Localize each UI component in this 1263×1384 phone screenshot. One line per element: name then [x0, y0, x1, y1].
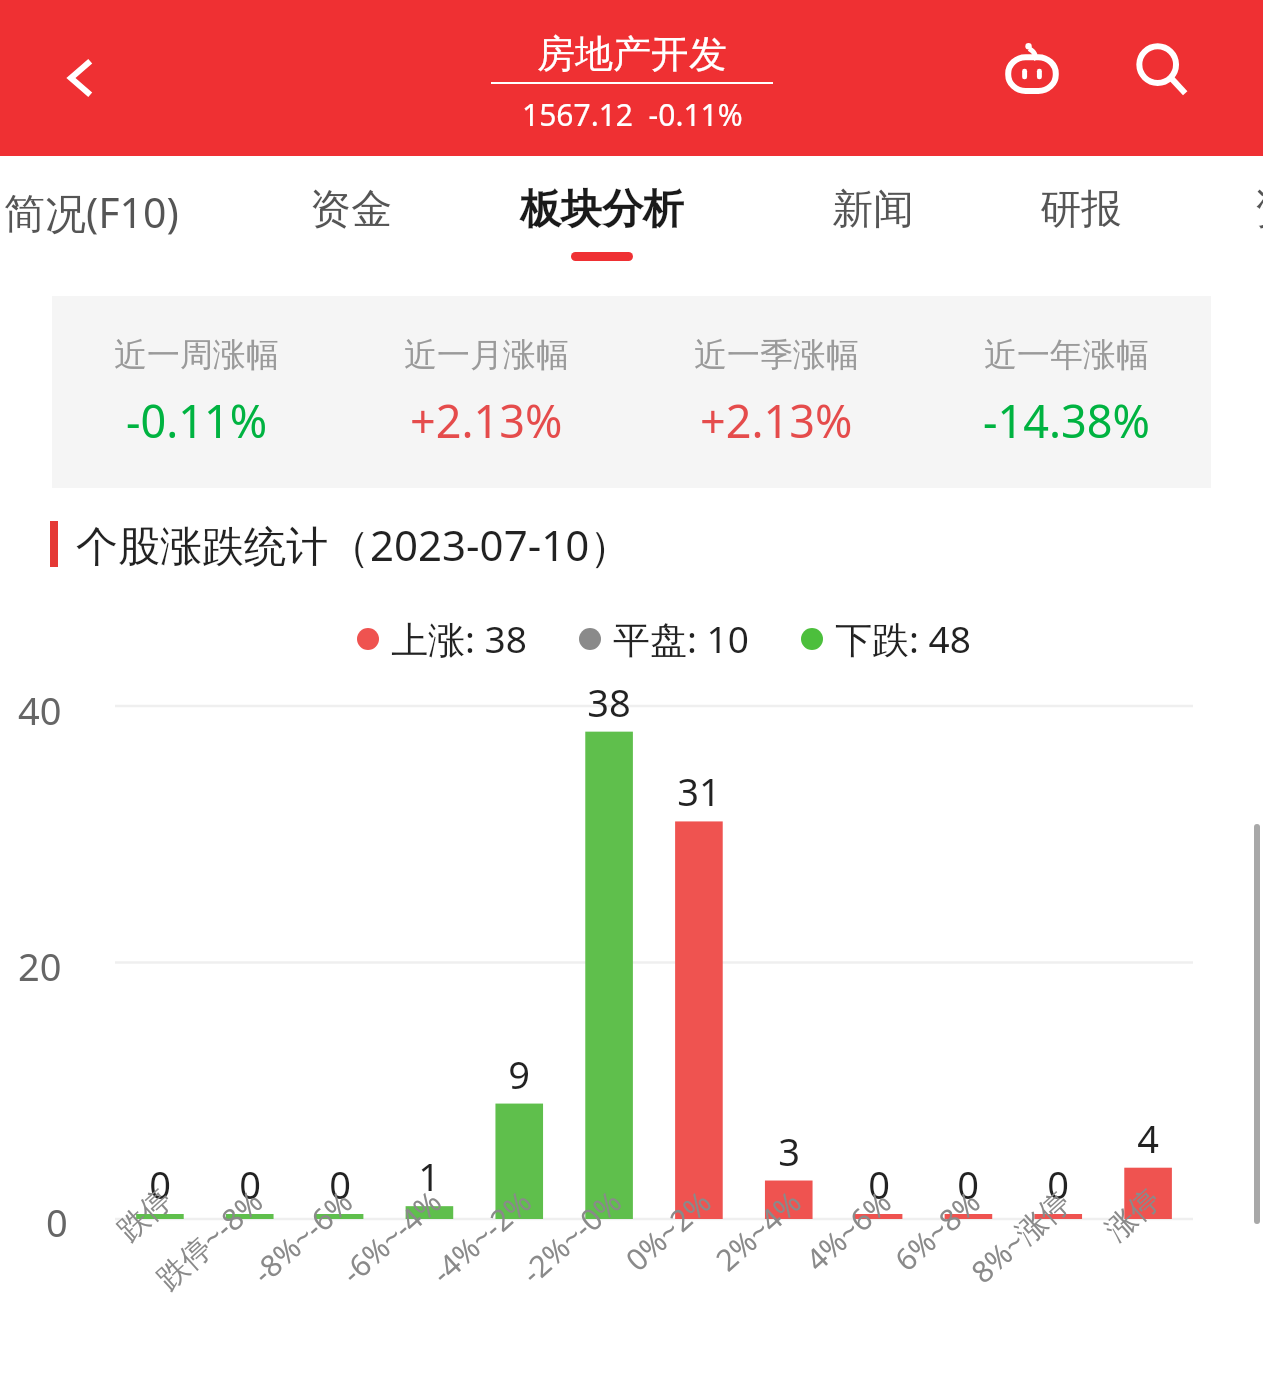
staticText: 个股涨跌统计（2023-07-10） — [76, 516, 632, 573]
staticText: 1 — [418, 1150, 440, 1202]
staticText: 8%~涨停 — [962, 1181, 1079, 1292]
button[interactable]: 近一季涨幅 — [631, 334, 921, 451]
button[interactable]: 资 — [1236, 156, 1263, 296]
staticText: 40 — [18, 684, 62, 736]
staticText: -0.11% — [126, 390, 268, 451]
staticText: 简况(F10) — [4, 184, 179, 240]
staticText: 0 — [46, 1196, 68, 1248]
staticText: 板块分析 — [520, 184, 684, 236]
staticText: -6%~-4% — [332, 1181, 450, 1292]
staticText: 3 — [778, 1125, 800, 1177]
staticText: 下跌: 48 — [835, 613, 971, 664]
button[interactable]: Search — [1120, 28, 1204, 112]
staticText: 4%~6% — [796, 1181, 900, 1280]
staticText: -8%~-6% — [243, 1181, 361, 1292]
staticText: 平盘: 10 — [613, 613, 749, 664]
staticText: 新闻 — [832, 184, 914, 236]
staticText: 0 — [868, 1158, 890, 1210]
button[interactable]: 近一月涨幅 — [341, 334, 631, 451]
staticText: 资金 — [310, 184, 392, 236]
button[interactable]: Back — [48, 45, 114, 111]
staticText: 9 — [508, 1048, 530, 1100]
staticText: 31 — [677, 765, 721, 817]
staticText: 0 — [329, 1158, 351, 1210]
button[interactable]: 板块分析 — [502, 156, 702, 296]
staticText: 近一年涨幅 — [984, 334, 1149, 376]
staticText: 38 — [587, 676, 631, 728]
staticText: 涨停 — [1098, 1181, 1168, 1249]
staticText: -14.38% — [983, 390, 1150, 451]
staticText: 上涨: 38 — [391, 613, 527, 664]
staticText: 4 — [1137, 1112, 1159, 1164]
staticText: 20 — [18, 940, 62, 992]
staticText: 近一周涨幅 — [114, 334, 279, 376]
staticText: 0 — [149, 1158, 171, 1210]
button[interactable]: 资金 — [292, 156, 410, 296]
staticText: 研报 — [1040, 184, 1122, 236]
staticText: 0 — [957, 1158, 979, 1210]
staticText: 跌停 — [110, 1181, 180, 1249]
staticText: 房地产开发 — [537, 30, 727, 78]
staticText: 0 — [1047, 1158, 1069, 1210]
staticText: -4%~-2% — [422, 1181, 540, 1292]
staticText: +2.13% — [700, 390, 853, 451]
staticText: 近一季涨幅 — [694, 334, 859, 376]
button[interactable]: 研报 — [1022, 156, 1140, 296]
button[interactable]: AI assistant — [990, 28, 1074, 112]
button[interactable]: 简况(F10) — [0, 156, 197, 296]
staticText: 0%~2% — [616, 1181, 720, 1280]
staticText: 资 — [1254, 184, 1263, 236]
staticText: 0 — [239, 1158, 261, 1210]
staticText: 近一月涨幅 — [404, 334, 569, 376]
staticText: 跌停~-8% — [147, 1181, 271, 1298]
button[interactable]: 近一周涨幅 — [52, 334, 341, 451]
staticText: 6%~8% — [885, 1181, 989, 1280]
button[interactable]: 新闻 — [814, 156, 932, 296]
staticText: 1567.12 -0.11% — [522, 94, 743, 135]
staticText: 2%~4% — [706, 1181, 810, 1280]
staticText: -2%~-0% — [512, 1181, 630, 1292]
staticText: +2.13% — [410, 390, 563, 451]
button[interactable]: 近一年涨幅 — [921, 334, 1211, 451]
